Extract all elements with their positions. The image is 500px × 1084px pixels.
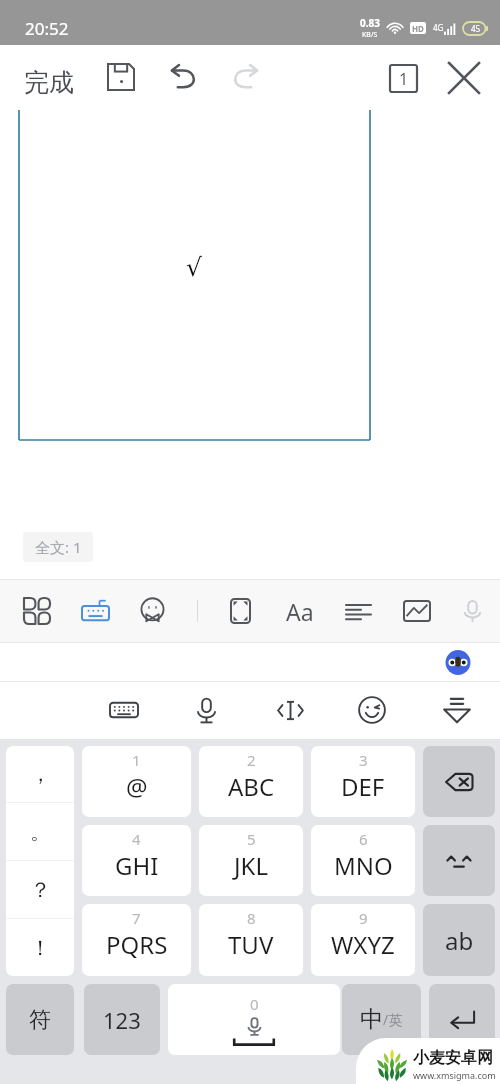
- staticText: 8: [247, 908, 256, 928]
- button[interactable]: 9: [311, 904, 415, 976]
- staticText: TUV: [228, 928, 274, 961]
- button[interactable]: 6: [311, 825, 415, 896]
- button[interactable]: Insert image: [396, 590, 438, 632]
- button[interactable]: Undo: [162, 54, 208, 100]
- button[interactable]: Close: [440, 54, 488, 102]
- button[interactable]: Select region: [219, 590, 261, 632]
- staticText: ，: [30, 761, 51, 787]
- button[interactable]: Voice input: [183, 687, 229, 733]
- button[interactable]: 1: [82, 746, 191, 817]
- staticText: MNO: [334, 849, 393, 882]
- staticText: 20:52: [25, 17, 69, 40]
- button[interactable]: 7: [82, 904, 191, 976]
- staticText: PQRS: [106, 928, 168, 961]
- staticText: DEF: [341, 770, 385, 803]
- staticText: 3: [359, 750, 368, 770]
- staticText: HD: [412, 23, 424, 34]
- button[interactable]: Chinese English toggle: [342, 984, 421, 1055]
- button[interactable]: Hide keyboard: [434, 687, 480, 733]
- staticText: 6: [359, 829, 368, 849]
- button[interactable]: 完成: [14, 59, 84, 106]
- button[interactable]: Move cursor: [267, 687, 313, 733]
- staticText: 全文: 1: [35, 537, 82, 557]
- button[interactable]: Align: [337, 590, 379, 632]
- staticText: /英: [383, 1010, 403, 1029]
- button[interactable]: Save: [98, 54, 144, 100]
- staticText: 0: [250, 994, 259, 1014]
- staticText: 0.83: [360, 16, 380, 30]
- button[interactable]: 符: [6, 984, 74, 1055]
- button[interactable]: 123: [84, 984, 160, 1055]
- button[interactable]: 5: [199, 825, 303, 896]
- button[interactable]: 2: [199, 746, 303, 817]
- button[interactable]: 全文: 1: [23, 532, 93, 562]
- button[interactable]: ，: [6, 746, 74, 976]
- button[interactable]: 4: [82, 825, 191, 896]
- staticText: 45: [471, 23, 481, 34]
- staticText: 。: [30, 819, 51, 845]
- button[interactable]: Keyboard layout: [101, 687, 147, 733]
- button[interactable]: ab: [423, 904, 495, 976]
- button[interactable]: 。: [6, 803, 74, 860]
- button[interactable]: Backspace: [423, 746, 495, 817]
- staticText: 中: [360, 1005, 383, 1034]
- button[interactable]: Enter: [429, 984, 495, 1055]
- staticText: Aa: [286, 596, 314, 627]
- button[interactable]: Apps: [16, 590, 58, 632]
- staticText: 5: [247, 829, 256, 849]
- staticText: 符: [29, 1006, 51, 1034]
- staticText: ！: [30, 935, 51, 961]
- staticText: 7: [132, 908, 141, 928]
- staticText: JKL: [234, 849, 268, 882]
- staticText: 小麦安卓网: [413, 1048, 493, 1068]
- staticText: 1: [132, 750, 141, 770]
- staticText: 9: [359, 908, 368, 928]
- staticText: 1: [399, 68, 409, 90]
- staticText: GHI: [115, 849, 159, 882]
- button[interactable]: Redo: [221, 54, 267, 100]
- button[interactable]: Aa: [279, 590, 321, 632]
- button[interactable]: AI assistant: [445, 649, 471, 675]
- button[interactable]: ！: [6, 919, 74, 976]
- staticText: ABC: [228, 770, 275, 803]
- button[interactable]: Space: [168, 984, 340, 1055]
- staticText: 4G: [433, 22, 444, 33]
- button[interactable]: ，: [6, 746, 74, 802]
- button[interactable]: Voice input: [451, 590, 493, 632]
- button[interactable]: 8: [199, 904, 303, 976]
- button[interactable]: Emoji: [349, 687, 395, 733]
- button[interactable]: Keyboard: [74, 590, 116, 632]
- staticText: @: [126, 770, 148, 803]
- staticText: 4: [132, 829, 141, 849]
- button[interactable]: Emoji: [131, 590, 173, 632]
- staticText: 完成: [24, 67, 74, 98]
- staticText: 123: [103, 1005, 141, 1035]
- staticText: ab: [445, 924, 474, 957]
- staticText: WXYZ: [331, 928, 395, 961]
- button[interactable]: Kaomoji: [423, 825, 495, 896]
- staticText: www.xmsigma.com: [413, 1069, 496, 1081]
- staticText: 2: [247, 750, 256, 770]
- button[interactable]: Page count: [380, 55, 426, 101]
- button[interactable]: 3: [311, 746, 415, 817]
- staticText: ？: [30, 877, 51, 903]
- button[interactable]: ？: [6, 861, 74, 918]
- staticText: KB/S: [362, 30, 378, 40]
- staticText: √: [186, 253, 202, 282]
